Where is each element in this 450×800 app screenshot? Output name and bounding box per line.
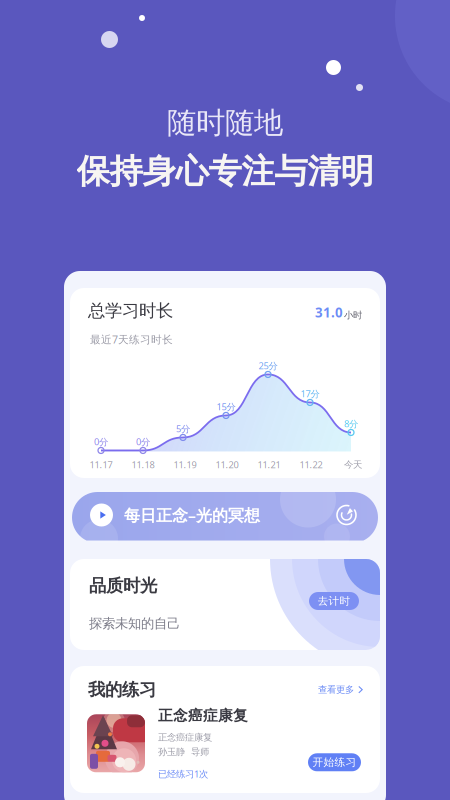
button[interactable]: 开始练习 xyxy=(308,753,361,771)
staticText: 已经练习1次 xyxy=(158,768,208,780)
staticText: 5分 xyxy=(176,422,190,435)
staticText: 11.20 xyxy=(215,458,238,471)
staticText: 0分 xyxy=(94,435,108,448)
staticText: 最近7天练习时长 xyxy=(90,332,173,346)
staticText: 11.19 xyxy=(173,458,196,471)
staticText: 随时随地 xyxy=(167,105,283,141)
button[interactable]: 查看更多 xyxy=(318,684,363,695)
button[interactable]: 去计时 xyxy=(309,592,359,610)
staticText: 探索未知的自己 xyxy=(89,615,180,632)
staticText: 正念癌症康复 xyxy=(158,707,248,725)
staticText: 11.17 xyxy=(89,458,112,471)
staticText: 11.22 xyxy=(299,458,322,471)
staticText: 保持身心专注与清明 xyxy=(76,151,373,192)
staticText: 11.21 xyxy=(257,458,280,471)
staticText: 17分 xyxy=(300,387,319,400)
staticText: 今天 xyxy=(344,459,362,470)
staticText: 我的练习 xyxy=(88,679,156,700)
staticText: 每日正念–光的冥想 xyxy=(124,504,260,526)
staticText: 小时 xyxy=(344,309,362,321)
staticText: 0分 xyxy=(136,435,150,448)
staticText: 孙玉静 导师 xyxy=(158,746,209,758)
staticText: 15分 xyxy=(216,400,235,413)
button[interactable]: 每日正念–光的冥想 xyxy=(72,492,378,543)
staticText: 11.18 xyxy=(131,458,154,471)
staticText: 去计时 xyxy=(317,594,350,607)
staticText: 总学习时长 xyxy=(88,300,173,321)
staticText: 25分 xyxy=(258,359,277,372)
staticText: 8分 xyxy=(344,417,358,430)
staticText: 品质时光 xyxy=(89,575,157,596)
staticText: 开始练习 xyxy=(312,756,356,769)
staticText: 查看更多 xyxy=(318,684,354,695)
staticText: 31.0 xyxy=(315,304,343,321)
staticText: 正念癌症康复 xyxy=(158,732,212,743)
